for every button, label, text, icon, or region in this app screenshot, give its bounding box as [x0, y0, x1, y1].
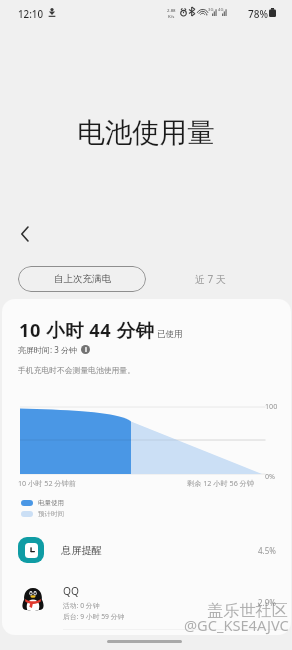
staticText: 78%	[248, 7, 268, 21]
staticText: 息屏提醒	[61, 544, 102, 557]
button[interactable]: Info	[81, 345, 90, 354]
staticText: 后台: 9 小时 59 分钟	[63, 612, 125, 621]
staticText: 剩余 12 小时 56 分钟	[187, 478, 255, 488]
button[interactable]: 自上次充满电	[18, 266, 146, 292]
staticText: 10 小时 44 分钟	[19, 317, 155, 342]
staticText: 4.5%	[258, 545, 276, 556]
staticText: 0%	[265, 471, 276, 481]
staticText: 100	[265, 401, 278, 411]
staticText: 2.9%	[258, 597, 276, 608]
staticText: 亮屏时间: 3 分钟	[18, 344, 77, 355]
button[interactable]: Back	[7, 217, 41, 251]
staticText: i	[85, 345, 87, 354]
button[interactable]: QQ	[2, 574, 291, 630]
staticText: 2.88	[167, 7, 176, 13]
staticText: 盖乐世社区	[207, 600, 288, 620]
staticText: 已使用	[157, 329, 183, 340]
staticText: 预计时间	[38, 510, 64, 518]
staticText: 自上次充满电	[54, 273, 111, 285]
button[interactable]: 息屏提醒	[2, 528, 291, 572]
staticText: 近 7 天	[195, 272, 226, 286]
staticText: 活动: 0 分钟	[63, 601, 100, 610]
staticText: @GC_KSE4AJVC	[184, 615, 289, 635]
staticText: QQ	[63, 584, 79, 598]
staticText: 4G	[218, 7, 224, 13]
staticText: 电池使用量	[0, 116, 292, 151]
staticText: K/s	[168, 13, 175, 19]
staticText: 3G	[208, 7, 214, 13]
staticText: 电量使用	[38, 499, 64, 507]
staticText: 10 小时 52 分钟前	[18, 478, 76, 488]
button[interactable]: 近 7 天	[186, 266, 234, 292]
staticText: 12:10	[18, 8, 44, 21]
staticText: 手机充电时不会测量电池使用量。	[18, 365, 135, 375]
